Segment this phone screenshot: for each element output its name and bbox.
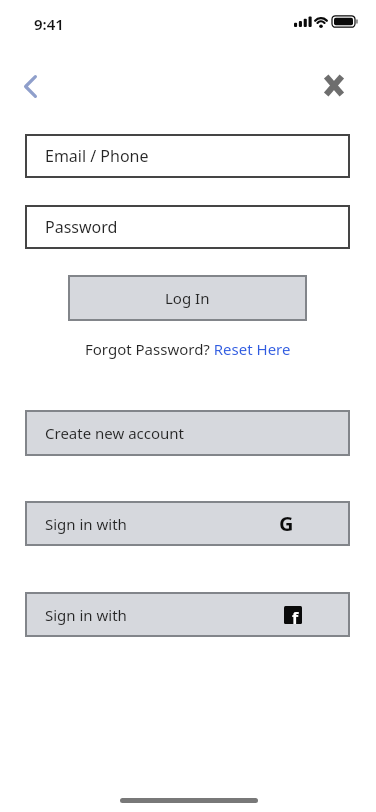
staticText: G [279,510,294,537]
staticText: Log In [165,288,210,308]
staticText: Sign in with [45,514,127,534]
button[interactable]: Sign in with [25,501,350,546]
button[interactable]: Create new account [25,410,350,456]
button[interactable] [315,65,353,105]
staticText: Create new account [45,423,184,443]
staticText: Email / Phone [45,145,149,167]
staticText: Forgot Password? Reset Here [85,339,291,359]
staticText: f [292,607,299,624]
button[interactable]: Password [25,205,350,249]
button[interactable]: Forgot Password? Reset Here [85,339,291,359]
staticText: 9:41 [34,14,64,34]
button[interactable] [14,66,50,106]
staticText: Sign in with [45,605,127,625]
button[interactable]: Sign in with [25,592,350,637]
staticText: Password [45,216,118,238]
button[interactable]: Email / Phone [25,134,350,178]
button[interactable]: Log In [68,275,307,321]
